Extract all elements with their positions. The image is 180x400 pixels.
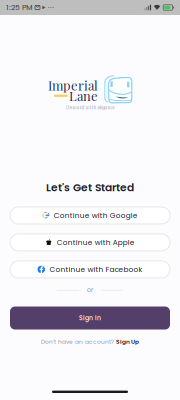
staticText: Sign Up <box>116 337 139 346</box>
staticText: Continue with Facebook <box>49 264 142 275</box>
staticText: 1:25 PM <box>6 2 33 13</box>
button[interactable]: Continue with Google <box>10 207 170 224</box>
staticText: Onward with elegance <box>65 104 114 110</box>
button[interactable]: Continue with Apple <box>10 234 170 251</box>
staticText: or <box>87 286 93 294</box>
button[interactable]: Continue with Facebook <box>10 261 170 278</box>
staticText: Sign In <box>79 314 101 322</box>
staticText: Imperial <box>48 77 98 94</box>
button[interactable]: Don't have an account? <box>41 337 139 346</box>
staticText: Lane <box>69 87 98 104</box>
staticText: Let's Get Started <box>46 180 134 195</box>
staticText: Continue with Google <box>54 210 138 221</box>
staticText: Don't have an account? <box>41 337 114 346</box>
staticText: Continue with Apple <box>57 237 135 248</box>
button[interactable]: Sign In <box>10 306 170 329</box>
